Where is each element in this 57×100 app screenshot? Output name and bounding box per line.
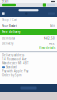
button[interactable]: Cart [48, 12, 55, 15]
button[interactable]: Free delivery [0, 29, 57, 35]
staticText: Order by 5pm [2, 73, 21, 77]
staticText: Pay with Apple Pay [2, 69, 28, 73]
staticText: Item total [2, 37, 15, 40]
staticText: Manchester M1 4BT [2, 61, 28, 65]
staticText: Your Basket [2, 24, 17, 28]
staticText: View details [39, 46, 55, 50]
staticText: Edit [50, 24, 55, 28]
staticText: 9:41 [2, 0, 9, 3]
staticText: Delivery address [2, 53, 24, 57]
staticText: $42.50 [44, 37, 55, 40]
staticText: Delivery [2, 42, 13, 45]
staticText: Shop / Cart [2, 18, 17, 22]
staticText: 14 Rosewood Ave [2, 57, 27, 61]
staticText: Free delivery [2, 30, 20, 34]
button[interactable]: Checkout [20, 86, 36, 89]
button[interactable]: App icon [43, 3, 46, 7]
button[interactable]: Account [25, 12, 28, 15]
button[interactable]: Brand [2, 4, 16, 6]
staticText: Free [49, 42, 55, 45]
staticText: Standard [6, 65, 17, 69]
button[interactable]: Menu [2, 12, 5, 15]
